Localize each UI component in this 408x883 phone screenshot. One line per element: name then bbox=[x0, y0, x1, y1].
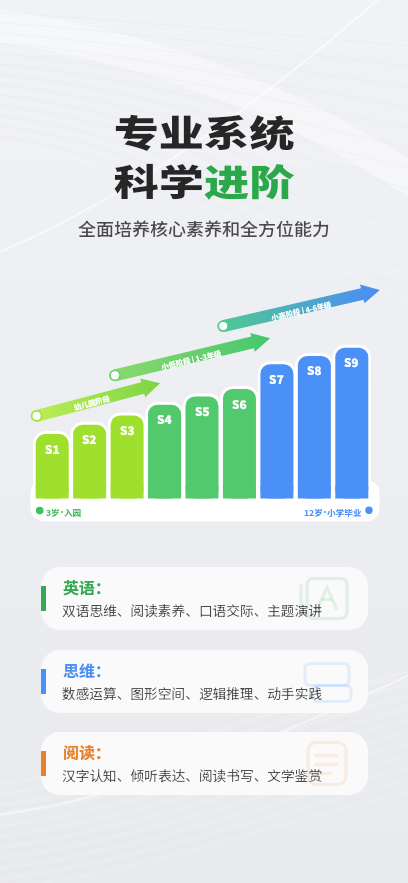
staticText: 英语： bbox=[63, 575, 112, 598]
staticText: S3 bbox=[120, 422, 135, 439]
staticText: S4 bbox=[157, 411, 172, 428]
staticText: 科学 bbox=[114, 153, 204, 207]
staticText: S2 bbox=[82, 431, 97, 448]
staticText: 小高阶段 | 4-6年级 bbox=[270, 298, 333, 323]
staticText: S1 bbox=[45, 441, 60, 458]
staticText: 进阶 bbox=[204, 153, 294, 207]
staticText: 入园 bbox=[64, 506, 82, 518]
staticText: 专业系统 bbox=[114, 104, 294, 158]
staticText: 全面培养核心素养和全方位能力 bbox=[78, 215, 330, 241]
staticText: 阅读： bbox=[63, 740, 112, 763]
staticText: 数感运算、图形空间、逻辑推理、动手实践 bbox=[62, 683, 323, 703]
staticText: S5 bbox=[195, 403, 210, 420]
staticText: 双语思维、阅读素养、口语交际、主题演讲 bbox=[62, 600, 323, 620]
button[interactable]: 阅读： bbox=[41, 732, 368, 795]
staticText: 汉字认知、倾听表达、阅读书写、文学鉴赏 bbox=[62, 765, 323, 785]
staticText: S6 bbox=[232, 396, 247, 413]
button[interactable]: 思维： bbox=[41, 650, 368, 713]
staticText: 小学毕业 bbox=[327, 506, 362, 518]
staticText: S7 bbox=[269, 371, 284, 388]
staticText: 12岁 bbox=[304, 506, 323, 518]
staticText: S8 bbox=[307, 362, 322, 379]
staticText: 幼儿园阶段 bbox=[72, 392, 111, 412]
staticText: 小低阶段 | 1-3年级 bbox=[160, 347, 223, 372]
staticText: S9 bbox=[344, 354, 359, 371]
button[interactable]: 英语： bbox=[41, 567, 368, 630]
staticText: 思维： bbox=[63, 658, 112, 681]
staticText: 3岁 bbox=[46, 506, 60, 518]
